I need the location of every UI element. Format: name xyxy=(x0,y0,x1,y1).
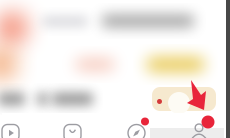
button[interactable]: Shop xyxy=(62,123,82,138)
button[interactable]: Profile xyxy=(189,123,209,138)
button[interactable]: Watch xyxy=(0,123,20,138)
button[interactable]: Explore xyxy=(126,123,146,138)
